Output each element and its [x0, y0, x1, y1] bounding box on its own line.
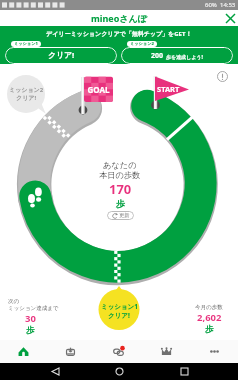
staticText: mineoさんぽ — [91, 12, 147, 24]
staticText: ミッション1 — [101, 302, 138, 311]
staticText: ミッション1 — [14, 41, 38, 47]
button[interactable]: クリア! — [5, 47, 117, 64]
staticText: 170 — [109, 180, 132, 198]
button[interactable]: More — [190, 340, 238, 363]
staticText: 200 — [151, 51, 164, 61]
button[interactable]: Home — [0, 340, 47, 363]
staticText: 歩を達成しよう! — [166, 54, 203, 61]
button[interactable]: 200 — [121, 47, 233, 64]
button[interactable]: Back — [45, 363, 65, 380]
staticText: GOAL — [86, 84, 111, 95]
staticText: ミッション達成まで — [8, 305, 59, 312]
staticText: 今月の歩数 — [195, 304, 223, 311]
staticText: 本日の歩数 — [99, 170, 141, 180]
staticText: クリア! — [108, 311, 130, 320]
button[interactable]: Close — [222, 10, 238, 26]
button[interactable]: Rewards — [142, 340, 190, 363]
staticText: ミッション2 — [9, 86, 44, 94]
button[interactable]: Recents — [174, 363, 194, 380]
staticText: 歩 — [116, 198, 125, 209]
button[interactable]: 更新 — [107, 211, 134, 220]
staticText: 30 — [25, 312, 36, 325]
staticText: START — [157, 84, 180, 94]
button[interactable]: Home — [109, 363, 129, 380]
staticText: 更新 — [119, 212, 130, 219]
button[interactable]: Info — [212, 66, 232, 86]
staticText: 歩 — [26, 325, 35, 336]
staticText: クリア! — [16, 94, 37, 102]
staticText: デイリーミッションクリアで「無料チップ」をGET！ — [46, 30, 192, 38]
staticText: 60% 14:53 — [205, 1, 236, 9]
staticText: 2,602 — [197, 311, 222, 324]
staticText: 歩 — [205, 324, 214, 335]
staticText: 次の — [8, 298, 20, 305]
button[interactable]: Messages — [94, 340, 142, 363]
staticText: あなたの — [103, 160, 137, 170]
staticText: ミッション2 — [130, 41, 154, 47]
button[interactable]: Inbox — [47, 340, 94, 363]
staticText: クリア! — [48, 50, 75, 61]
